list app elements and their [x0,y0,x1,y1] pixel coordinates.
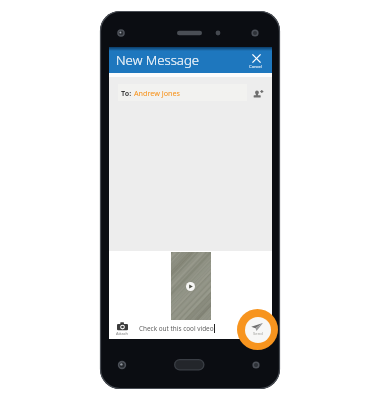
button[interactable]: Send [237,309,278,350]
button[interactable]: Attach [109,322,135,336]
staticText: New Message [116,51,200,69]
button[interactable] [118,84,247,101]
staticText: Send [253,331,263,337]
button[interactable]: Video attachment [171,252,211,320]
staticText: Andrew Jones [134,88,180,98]
staticText: Attach [116,331,129,336]
staticText: Cancel [249,64,263,70]
staticText: To: [121,88,132,98]
button[interactable]: Add contact [253,88,264,99]
staticText: Check out this cool video [139,324,214,333]
button[interactable]: Cancel [245,54,267,70]
